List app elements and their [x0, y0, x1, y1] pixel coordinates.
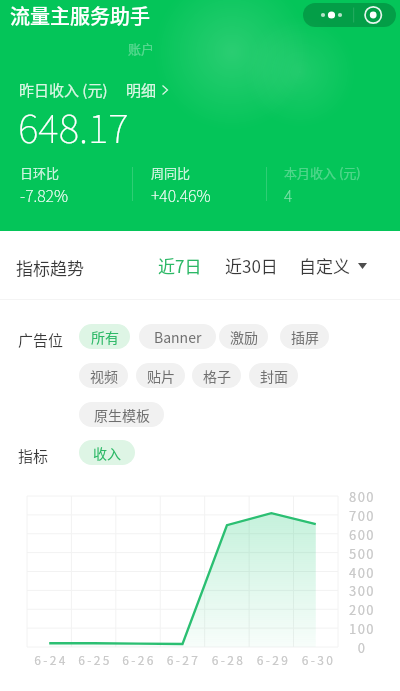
staticText: 插屏 — [291, 327, 319, 347]
staticText: 600 — [343, 525, 381, 544]
staticText: 400 — [343, 563, 381, 582]
staticText: 指标 — [18, 445, 49, 467]
staticText: 自定义 — [299, 253, 350, 278]
staticText: 贴片 — [147, 366, 175, 386]
staticText: 800 — [343, 487, 381, 506]
staticText: 封面 — [260, 366, 288, 386]
button[interactable]: 原生模板 — [79, 402, 164, 427]
button[interactable]: 收入 — [79, 440, 135, 465]
staticText: 100 — [343, 619, 381, 638]
button[interactable]: 激励 — [219, 324, 268, 349]
staticText: 激励 — [230, 327, 258, 347]
staticText: 广告位 — [18, 329, 64, 351]
staticText: 昨日收入 (元) — [19, 79, 108, 101]
staticText: 6-29 — [251, 651, 296, 668]
button[interactable]: 近30日 — [220, 248, 283, 283]
button[interactable]: 视频 — [79, 363, 128, 388]
button[interactable]: 明细 — [126, 79, 168, 101]
button[interactable]: Banner — [139, 324, 216, 349]
button[interactable]: 贴片 — [136, 363, 185, 388]
staticText: 500 — [343, 544, 381, 563]
staticText: 收入 — [93, 443, 121, 463]
staticText: 6-26 — [117, 651, 161, 668]
staticText: 本月收入 (元) — [284, 163, 361, 182]
staticText: 6-25 — [73, 651, 117, 668]
staticText: 近30日 — [225, 253, 278, 278]
staticText: 4 — [284, 183, 293, 206]
button[interactable]: More options — [303, 3, 396, 27]
staticText: 原生模板 — [94, 405, 150, 425]
staticText: 周同比 — [151, 163, 191, 182]
staticText: 6-24 — [29, 651, 73, 668]
button[interactable]: 封面 — [249, 363, 298, 388]
staticText: 流量主服务助手 — [10, 1, 150, 30]
button[interactable]: 格子 — [192, 363, 241, 388]
staticText: 明细 — [126, 79, 157, 101]
staticText: 视频 — [90, 366, 118, 386]
staticText: 6-30 — [296, 651, 341, 668]
staticText: 300 — [343, 581, 381, 600]
staticText: 指标趋势 — [16, 255, 84, 280]
button[interactable]: 插屏 — [280, 324, 329, 349]
button[interactable]: 自定义 — [294, 248, 372, 283]
staticText: 近7日 — [158, 253, 202, 278]
button[interactable]: 所有 — [79, 324, 130, 349]
staticText: 648.17 — [18, 98, 129, 154]
button[interactable]: 近7日 — [153, 248, 207, 283]
staticText: 6-27 — [161, 651, 206, 668]
staticText: 日环比 — [20, 163, 60, 182]
staticText: 200 — [343, 600, 381, 619]
staticText: -7.82% — [20, 183, 68, 206]
staticText: 700 — [343, 506, 381, 525]
staticText: 所有 — [91, 327, 119, 347]
button[interactable]: 账户 — [128, 39, 155, 58]
staticText: +40.46% — [151, 183, 211, 206]
staticText: 0 — [343, 638, 381, 657]
staticText: Banner — [154, 327, 202, 347]
staticText: 格子 — [203, 366, 231, 386]
staticText: 6-28 — [206, 651, 251, 668]
